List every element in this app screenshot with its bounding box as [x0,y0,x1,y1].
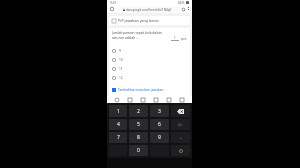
staticText: 5 [137,121,140,128]
staticText: 9 [119,49,121,53]
staticText: Tambahkan masukan jawaban [118,88,164,92]
staticText: 9 [158,134,161,141]
button[interactable]: More options [186,7,190,11]
button[interactable]: 10 [112,55,187,64]
button[interactable]: 5 [129,119,148,130]
button[interactable]: 11 [112,64,187,73]
staticText: Go [178,123,183,127]
button[interactable]: Grid [179,97,185,103]
staticText: 11 [119,67,123,71]
staticText: 2 [137,108,140,115]
other: Backspace [177,109,184,114]
staticText: 7 [117,134,120,141]
button[interactable]: 3 [150,105,169,117]
button[interactable]: Translate [140,97,146,103]
staticText: PtP jawaban yang benar [118,18,159,23]
button[interactable]: Go [171,119,190,130]
staticText: 8 [137,134,140,141]
button[interactable]: Settings [171,145,190,156]
staticText: Jumlah pemain sepak bola dalam satu tim … [112,31,169,39]
staticText: 1 [117,108,120,115]
button[interactable]: 9 [150,132,169,143]
button[interactable]: 7 [109,132,127,143]
button[interactable]: 1 [109,105,127,117]
button[interactable]: Tambahkan masukan jawaban [112,88,187,92]
button[interactable]: 4 [109,119,127,130]
button[interactable]: Copy [127,97,133,103]
staticText: 12 [119,76,123,80]
staticText: 4 [117,121,120,128]
button[interactable]: 8 [129,132,148,143]
staticText: 10 [119,58,123,62]
button[interactable]: Sticker [153,97,159,103]
staticText: 6 [158,121,161,128]
button[interactable]: Mail [166,97,172,103]
button[interactable]: Emoji [114,97,120,103]
staticText: - [180,135,182,141]
other: Settings [179,149,183,153]
button[interactable]: Refresh [181,7,186,12]
staticText: docs.google.com/forms/d/e/1FAIpQ [126,8,172,12]
button[interactable]: Backspace [171,105,190,117]
button[interactable]: 0 [129,145,148,156]
button[interactable]: - [171,132,190,143]
button[interactable]: docs.google.com/forms/d/e/1FAIpQ [115,6,180,13]
button[interactable]: 12 [112,73,187,82]
staticText: poin [181,37,187,41]
button[interactable]: 9 [112,46,187,55]
staticText: 1 [174,36,176,40]
staticText: 9:41 [110,1,117,5]
button[interactable]: 6 [150,119,169,130]
button[interactable]: 2 [129,105,148,117]
button[interactable]: Home [109,6,115,12]
button[interactable]: PtP jawaban yang benar [109,16,190,25]
staticText: 84% [178,1,185,5]
staticText: 3 [158,108,161,115]
staticText: 0 [137,147,140,154]
